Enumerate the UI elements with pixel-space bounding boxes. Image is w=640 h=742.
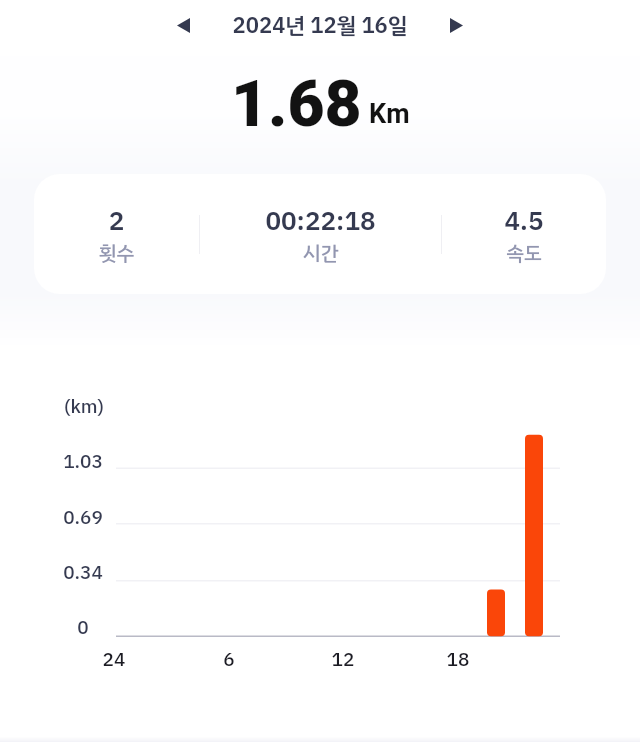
staticText: 시간 <box>200 238 441 268</box>
staticText: 0.69 <box>23 503 143 532</box>
staticText: 00:22:18 <box>200 202 441 241</box>
staticText: 1.68 <box>231 67 362 142</box>
staticText: 2 <box>34 202 199 241</box>
staticText: 24 <box>74 645 154 674</box>
button[interactable]: Previous day <box>160 2 206 48</box>
staticText: 횟수 <box>34 238 199 268</box>
staticText: 0 <box>23 613 143 642</box>
button[interactable]: 2 <box>34 174 606 294</box>
staticText: 12 <box>303 645 383 674</box>
staticText: 2024년 12월 16일 <box>0 9 640 42</box>
button[interactable]: Next day <box>433 2 479 48</box>
staticText: 1.03 <box>23 447 143 476</box>
staticText: 속도 <box>442 238 606 268</box>
staticText: 6 <box>189 645 269 674</box>
button[interactable]: 20시 0.22 km <box>487 589 505 636</box>
staticText: (km) <box>64 392 104 421</box>
button[interactable]: 22시 1.46 km <box>525 434 543 636</box>
staticText: 0.34 <box>23 558 143 587</box>
staticText: 4.5 <box>442 202 606 241</box>
staticText: Km <box>369 98 410 130</box>
staticText: 18 <box>418 645 498 674</box>
